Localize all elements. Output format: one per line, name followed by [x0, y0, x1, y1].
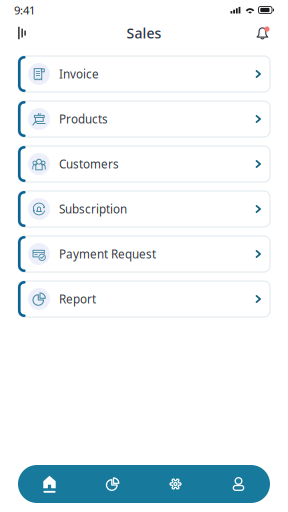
button[interactable]: Customers [18, 146, 270, 182]
button[interactable]: Settings [144, 465, 207, 503]
staticText: Invoice [59, 66, 99, 82]
staticText: Customers [59, 156, 119, 172]
staticText: 9:41 [14, 2, 35, 18]
button[interactable]: Notifications [247, 18, 279, 48]
staticText: Report [59, 291, 96, 307]
button[interactable]: Payment Request [18, 236, 270, 272]
button[interactable]: Home [18, 465, 81, 503]
button[interactable]: Invoice [18, 56, 270, 92]
staticText: Sales [126, 23, 161, 43]
staticText: Subscription [59, 201, 127, 217]
button[interactable]: Menu [6, 18, 38, 48]
button[interactable]: Subscription [18, 191, 270, 227]
button[interactable]: Profile [207, 465, 270, 503]
button[interactable]: Products [18, 101, 270, 137]
button[interactable]: Report [18, 281, 270, 317]
staticText: Payment Request [59, 246, 156, 262]
button[interactable]: Analytics [81, 465, 144, 503]
staticText: Products [59, 111, 108, 127]
